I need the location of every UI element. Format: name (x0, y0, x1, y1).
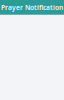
staticText: Prayer Notification (1, 3, 63, 12)
